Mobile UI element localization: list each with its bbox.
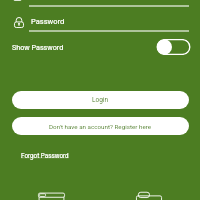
staticText: Forgot Password: [21, 152, 69, 159]
button[interactable]: Forgot Password: [21, 152, 69, 159]
button[interactable]: Don't have an account? Register here: [12, 117, 189, 135]
button[interactable]: Show password toggle: [156, 39, 191, 55]
staticText: Don't have an account? Register here: [49, 123, 152, 130]
button[interactable]: Bed: [38, 190, 65, 200]
button[interactable]: Sofa: [136, 190, 162, 200]
staticText: Login: [92, 96, 109, 104]
staticText: Password: [31, 17, 65, 26]
staticText: Show Password: [12, 43, 64, 51]
button[interactable]: Login: [12, 91, 189, 109]
